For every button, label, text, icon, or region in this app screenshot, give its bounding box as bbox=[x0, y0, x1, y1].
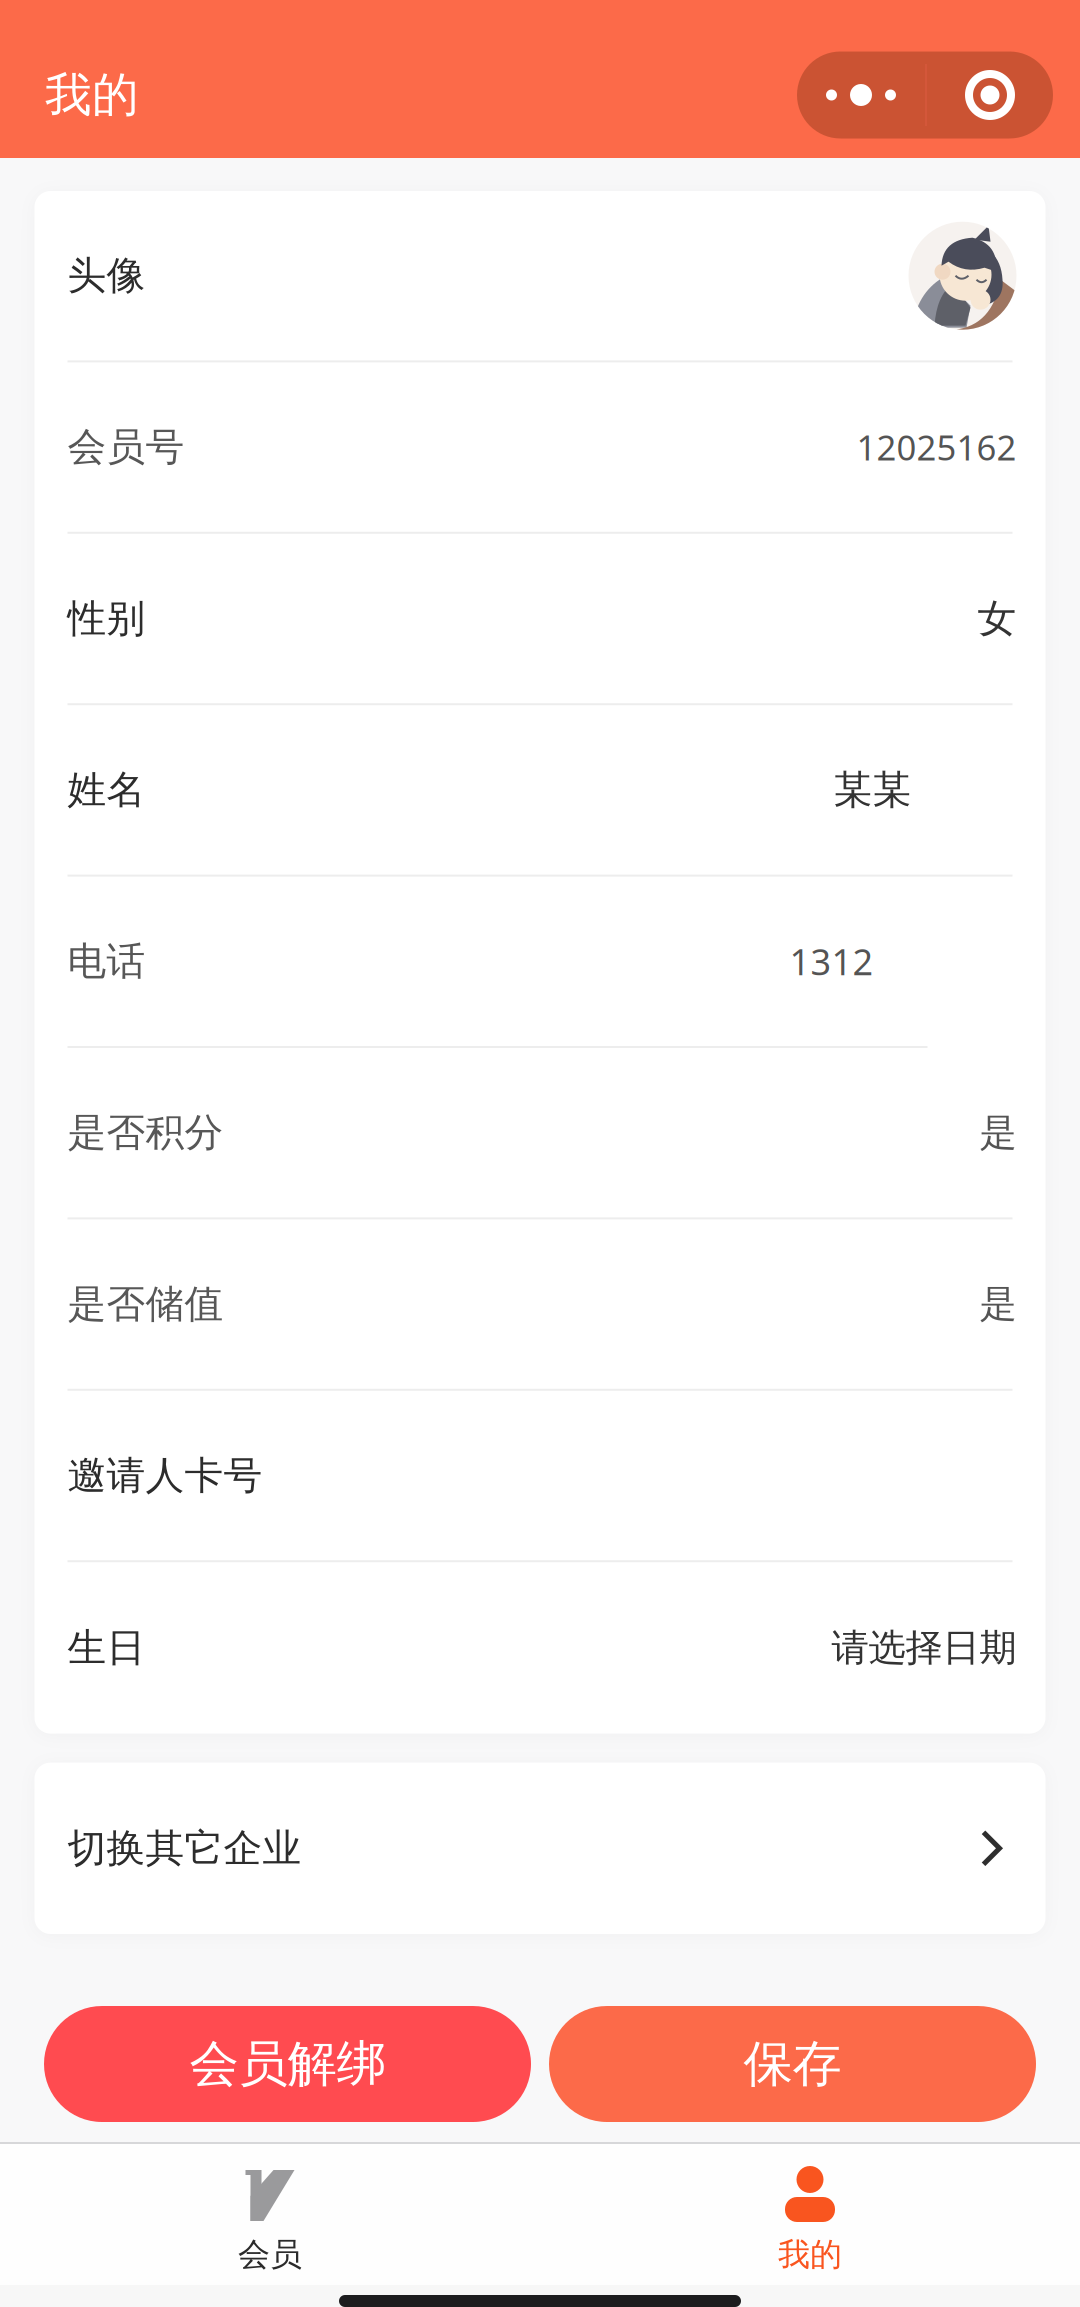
button[interactable]: Close bbox=[927, 51, 1053, 138]
button[interactable]: 会员解绑 bbox=[44, 2006, 531, 2122]
staticText: 1312 bbox=[789, 937, 873, 985]
button[interactable]: 姓名 bbox=[34, 705, 1045, 875]
staticText: 是 bbox=[979, 1281, 1016, 1327]
staticText: 会员 bbox=[238, 2235, 302, 2274]
staticText: 生日 bbox=[67, 1624, 145, 1672]
staticText: 性别 bbox=[67, 595, 145, 642]
staticText: 是 bbox=[979, 1110, 1016, 1156]
button[interactable]: 生日 bbox=[34, 1562, 1045, 1734]
button[interactable]: 是否积分 bbox=[34, 1048, 1045, 1217]
button[interactable]: 切换其它企业 bbox=[34, 1763, 1045, 1934]
staticText: 姓名 bbox=[67, 766, 145, 814]
staticText: 保存 bbox=[743, 2034, 841, 2094]
button[interactable]: 性别 bbox=[34, 534, 1045, 703]
staticText: 切换其它企业 bbox=[67, 1825, 301, 1872]
staticText: 会员号 bbox=[67, 423, 184, 471]
button[interactable]: 电话 bbox=[34, 877, 1045, 1046]
button[interactable]: 邀请人卡号 bbox=[34, 1391, 1045, 1560]
button[interactable]: 是否储值 bbox=[34, 1219, 1045, 1389]
staticText: 请选择日期 bbox=[831, 1625, 1016, 1671]
staticText: 头像 bbox=[67, 252, 145, 299]
staticText: 会员解绑 bbox=[189, 2034, 385, 2094]
button[interactable]: 头像 bbox=[34, 191, 1045, 360]
staticText: 邀请人卡号 bbox=[67, 1452, 262, 1499]
button[interactable]: More bbox=[797, 51, 925, 138]
button[interactable]: 会员 bbox=[0, 2144, 540, 2285]
staticText: 我的 bbox=[778, 2235, 842, 2274]
button[interactable]: 会员号 bbox=[34, 362, 1045, 532]
button[interactable]: 保存 bbox=[549, 2006, 1036, 2122]
staticText: 是否储值 bbox=[67, 1280, 223, 1328]
staticText: 电话 bbox=[67, 938, 145, 985]
button[interactable]: 我的 bbox=[540, 2144, 1080, 2285]
staticText: 女 bbox=[977, 595, 1016, 642]
staticText: 某某 bbox=[833, 766, 911, 814]
staticText: 是否积分 bbox=[67, 1109, 223, 1156]
staticText: 我的 bbox=[45, 66, 139, 124]
staticText: 12025162 bbox=[856, 424, 1016, 470]
